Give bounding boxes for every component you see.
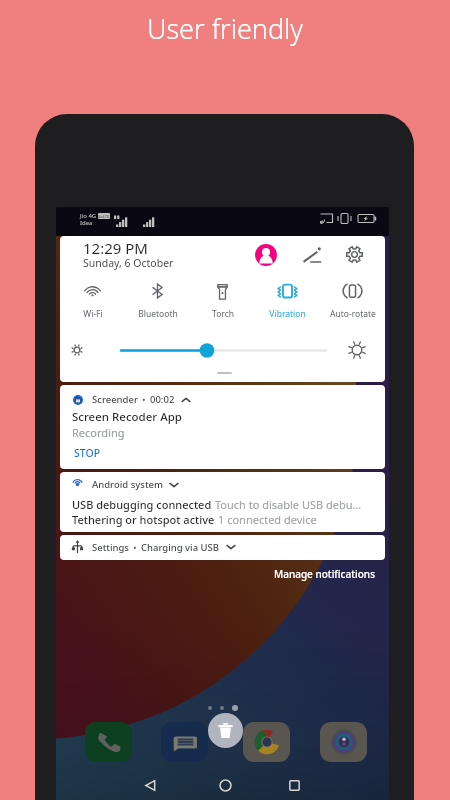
button[interactable]: Back <box>136 771 164 799</box>
staticText: • <box>133 541 137 554</box>
button[interactable]: Home <box>211 771 239 799</box>
staticText: Charging via USB <box>141 541 220 554</box>
staticText: Screender <box>92 393 138 406</box>
staticText: Sunday, 6 October <box>83 256 174 270</box>
staticText: USB debugging connected <box>72 497 215 512</box>
button[interactable]: Camera <box>320 722 367 762</box>
button[interactable]: Edit <box>301 244 322 265</box>
button[interactable]: Recents <box>280 771 308 799</box>
staticText: Tethering or hotspot active <box>72 512 218 527</box>
staticText: Idea <box>80 219 93 227</box>
staticText: Vibration <box>269 308 306 320</box>
staticText: Android system <box>92 478 163 491</box>
button[interactable]: STOP <box>72 444 103 462</box>
staticText: VoLTE <box>98 214 110 219</box>
button[interactable]: Bluetooth <box>125 282 190 320</box>
button[interactable]: Torch <box>190 282 255 320</box>
button[interactable]: User profile <box>253 242 279 268</box>
staticText: • <box>142 393 146 406</box>
staticText: Settings <box>92 541 129 554</box>
staticText: Recording <box>72 425 125 440</box>
staticText: Wi-Fi <box>83 308 103 320</box>
staticText: User friendly <box>0 10 450 47</box>
button[interactable]: Android system <box>60 472 385 532</box>
button[interactable]: Chrome <box>243 722 290 762</box>
button[interactable]: Settings <box>344 244 365 265</box>
staticText: Jio 4G <box>80 212 97 220</box>
button[interactable]: Messages <box>161 722 208 762</box>
staticText: Bluetooth <box>138 308 178 320</box>
button[interactable]: Screender <box>60 385 385 469</box>
button[interactable]: Manage notifications <box>56 567 375 581</box>
staticText: Touch to disable USB debu… <box>215 497 362 512</box>
button[interactable]: Settings <box>60 535 385 560</box>
staticText: 00:02 <box>150 393 175 406</box>
staticText: Screen Recoder App <box>72 409 182 425</box>
button[interactable]: Vibration <box>255 282 320 320</box>
staticText: STOP <box>74 446 101 460</box>
button[interactable]: Auto-rotate <box>320 282 385 320</box>
staticText: 1 connected device <box>218 512 317 527</box>
staticText: Auto-rotate <box>330 308 376 320</box>
button[interactable]: Phone <box>85 722 132 762</box>
button[interactable]: Wi-Fi <box>60 282 125 320</box>
button[interactable]: Remove <box>208 713 243 748</box>
staticText: Torch <box>212 308 234 320</box>
staticText: 12:29 PM <box>83 238 148 258</box>
